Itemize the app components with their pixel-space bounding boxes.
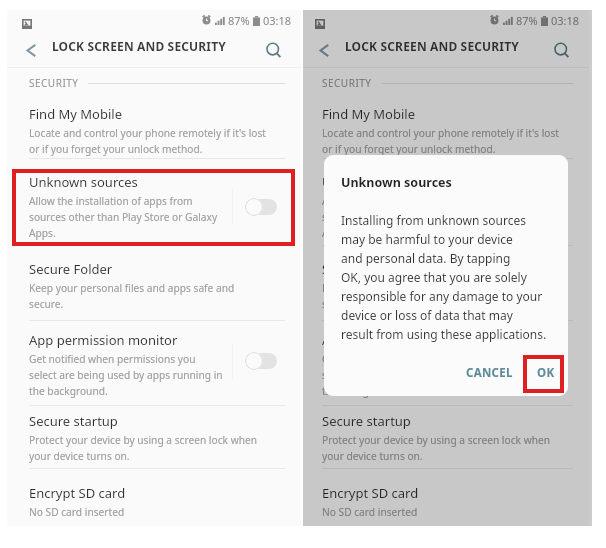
staticText: Find My Mobile bbox=[29, 105, 123, 123]
button[interactable]: Find My Mobile bbox=[322, 105, 559, 156]
staticText: Allow the installation of apps from sour… bbox=[29, 194, 218, 240]
staticText: SECURITY bbox=[29, 76, 79, 90]
button[interactable]: OK bbox=[526, 355, 566, 391]
staticText: Protect your device by using a screen lo… bbox=[29, 433, 257, 463]
staticText: App permission monitor bbox=[29, 331, 178, 349]
button[interactable]: Find My Mobile bbox=[29, 105, 266, 156]
staticText: Allow the installation of apps from sour… bbox=[322, 194, 511, 240]
button[interactable]: Secure Folder bbox=[322, 260, 528, 311]
staticText: 87% bbox=[516, 13, 538, 28]
staticText: Encrypt SD card bbox=[29, 484, 126, 502]
staticText: Locate and control your phone remotely i… bbox=[322, 126, 559, 156]
staticText: Keep your personal files and apps safe a… bbox=[29, 281, 235, 311]
staticText: Get notified when permissions you select… bbox=[29, 352, 223, 398]
button[interactable]: Back bbox=[306, 33, 342, 67]
button[interactable]: Unknown sources bbox=[322, 173, 511, 240]
button[interactable]: Encrypt SD card bbox=[322, 484, 419, 519]
button[interactable]: Search bbox=[545, 34, 579, 68]
staticText: 03:18 bbox=[551, 13, 580, 28]
staticText: LOCK SCREEN AND SECURITY bbox=[345, 38, 519, 54]
staticText: SECURITY bbox=[322, 76, 372, 90]
staticText: CANCEL bbox=[466, 365, 513, 381]
button[interactable]: Back bbox=[13, 33, 49, 67]
staticText: No SD card inserted bbox=[322, 505, 418, 519]
staticText: Secure Folder bbox=[322, 260, 406, 278]
button[interactable]: App permission monitor bbox=[322, 331, 516, 398]
staticText: Locate and control your phone remotely i… bbox=[29, 126, 266, 156]
button[interactable]: Secure startup bbox=[29, 412, 257, 463]
button[interactable]: App permission monitor bbox=[29, 331, 223, 398]
staticText: No SD card inserted bbox=[29, 505, 125, 519]
button[interactable]: Search bbox=[257, 34, 291, 68]
staticText: Get notified when permissions you select… bbox=[322, 352, 516, 398]
staticText: Unknown sources bbox=[322, 173, 431, 191]
staticText: App permission monitor bbox=[322, 331, 471, 349]
button[interactable]: Secure Folder bbox=[29, 260, 235, 311]
button[interactable]: CANCEL bbox=[455, 355, 524, 391]
button[interactable]: Toggle off bbox=[245, 351, 277, 371]
staticText: LOCK SCREEN AND SECURITY bbox=[52, 38, 226, 54]
staticText: Protect your device by using a screen lo… bbox=[322, 433, 550, 463]
button[interactable]: Toggle off bbox=[533, 351, 565, 371]
button[interactable]: Unknown sources bbox=[29, 173, 218, 240]
button[interactable]: Secure startup bbox=[322, 412, 550, 463]
staticText: Secure Folder bbox=[29, 260, 113, 278]
staticText: Keep your personal files and apps safe a… bbox=[322, 281, 528, 311]
button[interactable]: Toggle off bbox=[245, 197, 277, 217]
staticText: 87% bbox=[228, 13, 250, 28]
staticText: Find My Mobile bbox=[322, 105, 416, 123]
staticText: Secure startup bbox=[29, 412, 118, 430]
staticText: Installing from unknown sources may be h… bbox=[341, 212, 547, 342]
staticText: OK bbox=[537, 365, 555, 381]
staticText: Secure startup bbox=[322, 412, 411, 430]
staticText: 03:18 bbox=[263, 13, 292, 28]
button[interactable]: Encrypt SD card bbox=[29, 484, 126, 519]
staticText: Unknown sources bbox=[341, 174, 452, 191]
staticText: Encrypt SD card bbox=[322, 484, 419, 502]
staticText: Unknown sources bbox=[29, 173, 138, 191]
